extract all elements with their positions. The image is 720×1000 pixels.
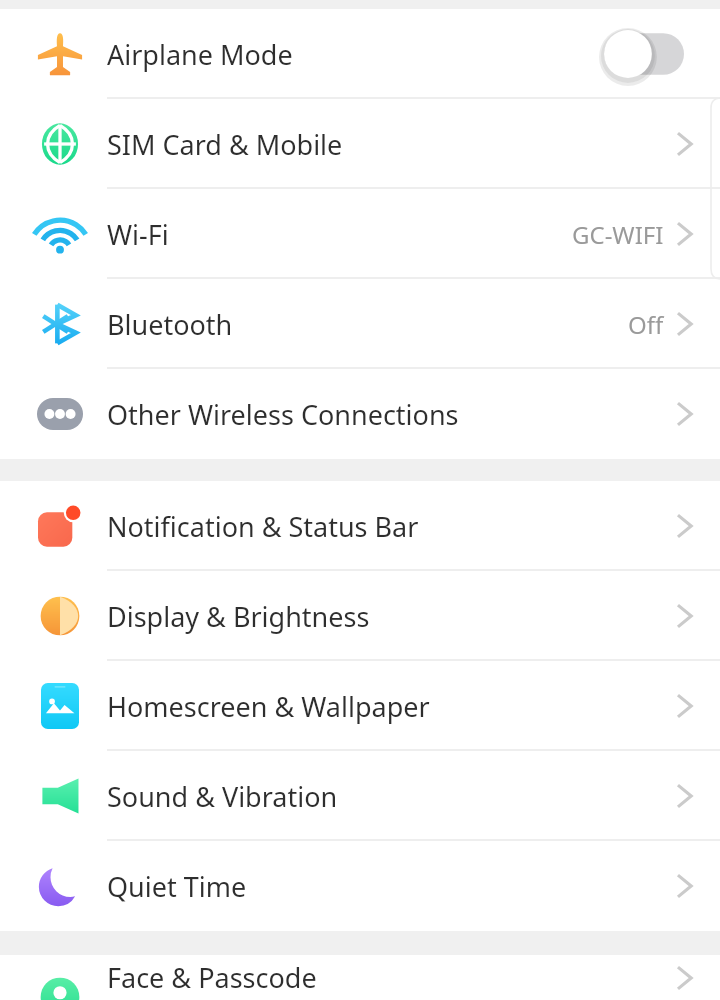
button[interactable]: SIM Card & Mobile: [0, 99, 720, 189]
button[interactable]: Airplane Mode: [0, 9, 720, 99]
button[interactable]: Other Wireless Connections: [0, 369, 720, 459]
staticText: SIM Card & Mobile: [107, 126, 343, 163]
staticText: GC-WIFI: [572, 218, 664, 251]
staticText: Airplane Mode: [107, 36, 293, 73]
staticText: Quiet Time: [107, 868, 247, 905]
button[interactable]: Airplane Mode toggle: [598, 28, 694, 80]
button[interactable]: Face & Passcode: [0, 955, 720, 1000]
button[interactable]: Display & Brightness: [0, 571, 720, 661]
button[interactable]: Notification & Status Bar: [0, 481, 720, 571]
staticText: Bluetooth: [107, 306, 233, 343]
staticText: Face & Passcode: [107, 959, 317, 996]
staticText: Sound & Vibration: [107, 778, 338, 815]
button[interactable]: Bluetooth: [0, 279, 720, 369]
staticText: Homescreen & Wallpaper: [107, 688, 430, 725]
staticText: Off: [628, 308, 664, 341]
staticText: Wi-Fi: [107, 216, 169, 253]
staticText: Notification & Status Bar: [107, 508, 419, 545]
button[interactable]: Sound & Vibration: [0, 751, 720, 841]
staticText: Other Wireless Connections: [107, 396, 459, 433]
staticText: Display & Brightness: [107, 598, 370, 635]
button[interactable]: Quiet Time: [0, 841, 720, 931]
button[interactable]: Homescreen & Wallpaper: [0, 661, 720, 751]
button[interactable]: Wi-Fi: [0, 189, 720, 279]
